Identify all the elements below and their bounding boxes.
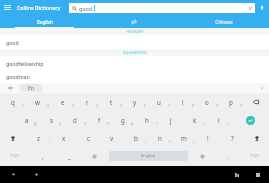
- staticText: k: [193, 116, 197, 124]
- staticText: 0: [240, 103, 242, 108]
- staticText: #: [59, 121, 62, 126]
- button[interactable]: a: [14, 111, 39, 129]
- staticText: /: [145, 139, 147, 144]
- button[interactable]: x: [51, 129, 76, 147]
- staticText: s: [50, 116, 53, 124]
- staticText: 8: [192, 103, 194, 108]
- staticText: 中: [8, 85, 13, 91]
- staticText: Chinese: [215, 19, 233, 25]
- button[interactable]: English: [0, 15, 89, 28]
- staticText: $: [84, 121, 86, 126]
- staticText: w: [35, 98, 40, 106]
- button[interactable]: goodfellowship: [0, 56, 269, 70]
- button[interactable]: Voice search: [255, 0, 269, 15]
- staticText: good: [6, 39, 19, 46]
- button[interactable]: Shift: [0, 129, 26, 147]
- staticText: r: [86, 98, 89, 106]
- button[interactable]: Shift: [244, 129, 269, 147]
- button[interactable]: Hide keyboard: [0, 166, 26, 183]
- button[interactable]: good: [0, 35, 269, 49]
- staticText: 1: [22, 103, 24, 108]
- staticText: b: [134, 134, 138, 142]
- staticText: ?123: [10, 153, 20, 159]
- staticText: ": [73, 139, 75, 144]
- button[interactable]: o: [195, 93, 219, 111]
- button[interactable]: f: [87, 111, 111, 129]
- staticText: 4: [96, 103, 98, 108]
- button[interactable]: Home: [26, 166, 46, 183]
- staticText: En: [28, 85, 34, 92]
- button[interactable]: Open navigation menu: [0, 0, 15, 15]
- button[interactable]: 中: [0, 83, 20, 93]
- button[interactable]: m: [172, 129, 196, 147]
- button[interactable]: Overview: [247, 166, 269, 183]
- button[interactable]: Clear search: [246, 4, 255, 13]
- button[interactable]: Chinese: [179, 15, 269, 28]
- staticText: ?: [169, 139, 171, 144]
- button[interactable]: Emoji: [82, 147, 107, 165]
- button[interactable]: _: [56, 147, 82, 165]
- button[interactable]: v: [100, 129, 124, 147]
- staticText: 6: [144, 103, 146, 108]
- staticText: good: [79, 5, 93, 12]
- button[interactable]: z: [26, 129, 51, 147]
- button[interactable]: En: [20, 84, 42, 92]
- button[interactable]: r: [75, 93, 99, 111]
- staticText: ?123: [250, 153, 260, 159]
- staticText: n: [158, 134, 162, 142]
- button[interactable]: s: [39, 111, 63, 129]
- staticText: 9: [216, 103, 218, 108]
- staticText: x: [62, 134, 66, 142]
- staticText: +: [204, 121, 206, 126]
- staticText: z: [37, 134, 40, 142]
- button[interactable]: l: [207, 111, 231, 129]
- staticText: HISTORY: [126, 29, 144, 35]
- staticText: English: [37, 19, 53, 25]
- staticText: &: [131, 121, 134, 126]
- button[interactable]: Swap languages: [89, 15, 179, 28]
- button[interactable]: ?123: [240, 147, 269, 165]
- button[interactable]: Recent apps: [227, 166, 247, 183]
- button[interactable]: English: [109, 151, 188, 161]
- button[interactable]: q: [0, 93, 25, 111]
- button[interactable]: j: [159, 111, 183, 129]
- button[interactable]: u: [147, 93, 171, 111]
- button[interactable]: p: [219, 93, 243, 111]
- button[interactable]: e: [50, 93, 75, 111]
- button[interactable]: b: [124, 129, 148, 147]
- button[interactable]: w: [25, 93, 50, 111]
- staticText: goodman: [6, 73, 30, 80]
- button[interactable]: good: [69, 3, 255, 13]
- button[interactable]: Backspace: [243, 93, 269, 111]
- staticText: Collins Dictionary: [17, 4, 61, 11]
- staticText: English: [141, 153, 156, 159]
- staticText: g: [121, 116, 125, 124]
- staticText: j: [170, 116, 172, 124]
- staticText: a: [25, 116, 29, 124]
- staticText: ,: [42, 152, 44, 160]
- staticText: u: [157, 98, 161, 106]
- button[interactable]: d: [63, 111, 87, 129]
- button[interactable]: i: [171, 93, 195, 111]
- button[interactable]: k: [183, 111, 207, 129]
- button[interactable]: !: [196, 129, 220, 147]
- button[interactable]: ,: [30, 147, 56, 165]
- button[interactable]: c: [76, 129, 100, 147]
- staticText: ): [193, 139, 195, 144]
- button[interactable]: h: [135, 111, 159, 129]
- button[interactable]: ?123: [0, 147, 30, 165]
- button[interactable]: g: [111, 111, 135, 129]
- button[interactable]: t: [99, 93, 123, 111]
- button[interactable]: goodman: [0, 70, 269, 83]
- button[interactable]: Enter: [231, 111, 269, 129]
- button[interactable]: Expand suggestions: [255, 83, 269, 93]
- button[interactable]: n: [148, 129, 172, 147]
- staticText: (: [228, 121, 230, 126]
- staticText: t: [110, 98, 113, 106]
- button[interactable]: y: [123, 93, 147, 111]
- staticText: SUGGESTED: [123, 50, 147, 56]
- button[interactable]: Settings: [190, 147, 215, 165]
- staticText: h: [145, 116, 149, 124]
- button[interactable]: ?: [220, 129, 244, 147]
